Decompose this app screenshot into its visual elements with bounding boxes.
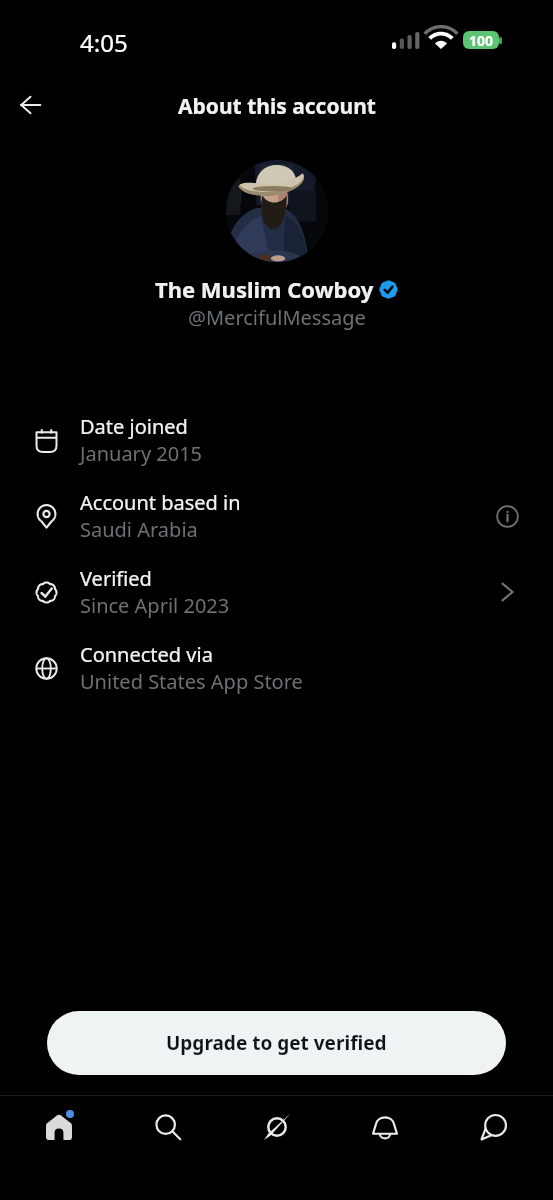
staticText: @MercifulMessage bbox=[188, 304, 366, 331]
button[interactable]: Notifications bbox=[335, 1096, 435, 1168]
button[interactable]: Grok bbox=[227, 1096, 327, 1168]
staticText: About this account bbox=[178, 92, 376, 121]
staticText: The Muslim Cowboy bbox=[155, 274, 374, 304]
button[interactable]: Back bbox=[8, 81, 52, 125]
button[interactable]: Search bbox=[118, 1096, 218, 1168]
button[interactable]: Account based in bbox=[0, 478, 553, 554]
staticText: January 2015 bbox=[80, 440, 203, 467]
staticText: Since April 2023 bbox=[80, 592, 230, 619]
button[interactable]: Messages bbox=[444, 1096, 544, 1168]
button[interactable]: Connected via bbox=[0, 630, 553, 706]
staticText: Connected via bbox=[80, 641, 213, 668]
staticText: Saudi Arabia bbox=[80, 516, 198, 543]
staticText: Verified bbox=[80, 565, 152, 592]
button[interactable]: Date joined bbox=[0, 402, 553, 478]
staticText: United States App Store bbox=[80, 668, 303, 695]
button[interactable]: Verified bbox=[0, 554, 553, 630]
staticText: 4:05 bbox=[80, 26, 128, 59]
button[interactable]: Upgrade to get verified bbox=[47, 1011, 506, 1075]
staticText: 100 bbox=[469, 31, 494, 49]
staticText: Upgrade to get verified bbox=[166, 1030, 387, 1056]
staticText: Account based in bbox=[80, 489, 241, 516]
staticText: Date joined bbox=[80, 413, 188, 440]
button[interactable]: Home bbox=[9, 1096, 109, 1168]
